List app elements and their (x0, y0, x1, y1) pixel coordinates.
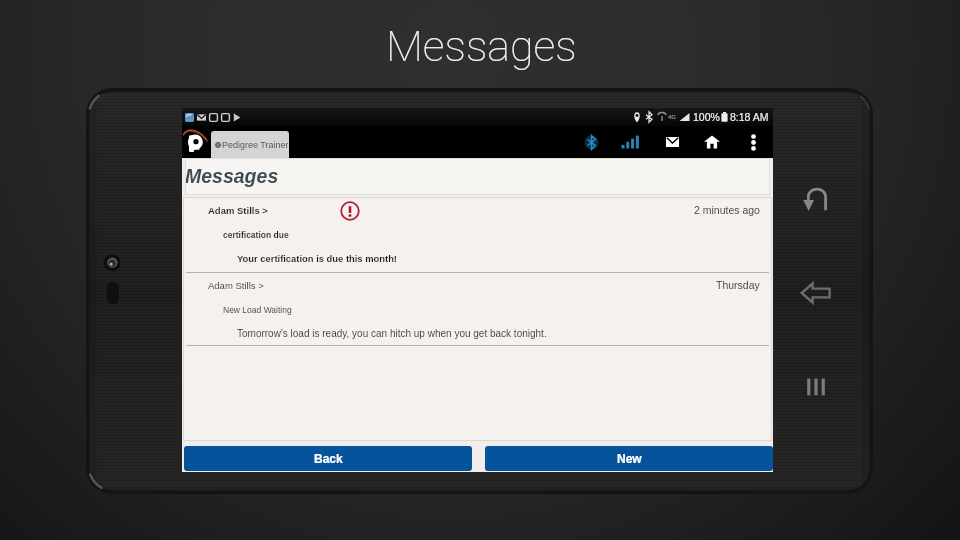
staticText: Your certification is due this month! (237, 253, 397, 264)
staticText: Pedigree Trainer (222, 140, 289, 150)
staticText: 2 minutes ago (694, 204, 760, 216)
button[interactable]: Home (699, 127, 725, 157)
button[interactable]: Recent apps (796, 367, 836, 407)
button[interactable]: Messages (660, 127, 684, 157)
staticText: Messages (185, 165, 279, 187)
staticText: certification due (223, 230, 289, 239)
staticText: Adam Stills > (208, 205, 268, 216)
button[interactable]: Back (184, 446, 472, 471)
staticText: 8:18 AM (730, 111, 769, 123)
button[interactable]: Signal strength (614, 127, 646, 157)
staticText: Back (314, 452, 343, 465)
button[interactable]: More options (743, 127, 763, 157)
staticText: Adam Stills > (208, 280, 264, 291)
staticText: Thursday (716, 279, 760, 291)
staticText: Tomorrow's load is ready, you can hitch … (237, 328, 547, 339)
staticText: New (617, 452, 642, 465)
staticText: 100% (693, 111, 720, 123)
button[interactable]: New (485, 446, 773, 471)
button[interactable]: Adam Stills > (182, 272, 773, 345)
staticText: New Load Waiting (223, 305, 292, 314)
button[interactable]: Previous (796, 273, 836, 313)
staticText: 4G (668, 114, 677, 121)
staticText: Messages (386, 21, 577, 71)
button[interactable]: Bluetooth (577, 127, 605, 157)
button[interactable]: Pedigree Trainer (211, 131, 289, 158)
button[interactable]: Back (796, 180, 836, 220)
button[interactable]: Adam Stills > (182, 197, 773, 272)
